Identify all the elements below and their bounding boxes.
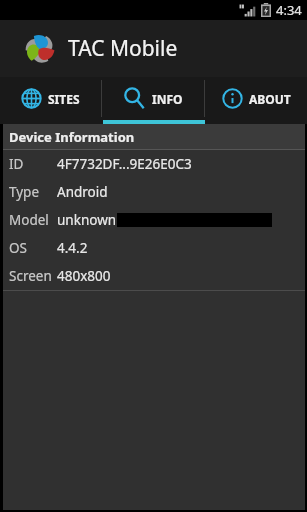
staticText: TAC Mobile: [68, 34, 178, 63]
staticText: Model: [9, 211, 49, 229]
button[interactable]: About: [205, 77, 307, 120]
button[interactable]: ID: [3, 150, 305, 178]
staticText: Type: [9, 183, 40, 201]
button[interactable]: Info: [102, 77, 204, 120]
staticText: 4F7732DF...9E26E0C3: [57, 155, 192, 173]
staticText: Android: [57, 183, 108, 201]
staticText: INFO: [152, 91, 183, 107]
other: Info: [123, 87, 146, 110]
staticText: OS: [9, 239, 27, 257]
other: About: [222, 88, 243, 109]
other: Sites: [21, 88, 42, 109]
staticText: unknown: [57, 211, 117, 229]
button[interactable]: OS: [3, 234, 305, 262]
staticText: ABOUT: [249, 91, 291, 107]
button[interactable]: Type: [3, 178, 305, 206]
staticText: 4.4.2: [57, 239, 88, 257]
staticText: 480x800: [57, 267, 111, 285]
staticText: Device Information: [9, 128, 135, 146]
staticText: SITES: [48, 91, 80, 107]
button[interactable]: Sites: [0, 77, 101, 120]
staticText: ID: [9, 155, 24, 173]
button[interactable]: Screen: [3, 262, 305, 290]
button[interactable]: Model: [3, 206, 305, 234]
staticText: Screen: [9, 267, 52, 285]
staticText: 4:34: [276, 1, 302, 19]
